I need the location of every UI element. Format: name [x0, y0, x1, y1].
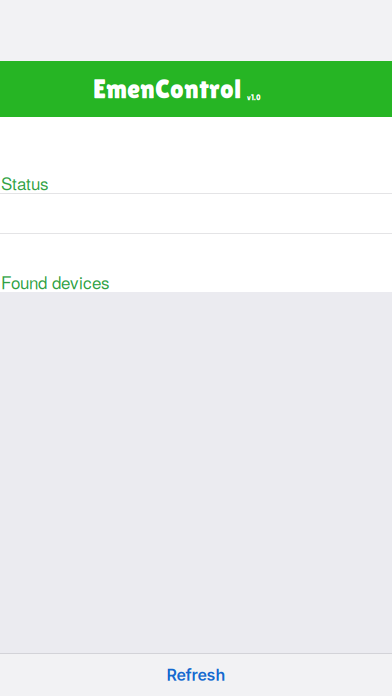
button[interactable]: Refresh: [0, 654, 392, 696]
staticText: Found devices: [1, 270, 110, 294]
staticText: v1.0: [247, 93, 261, 102]
staticText: EmenControl: [93, 74, 241, 104]
staticText: Refresh: [166, 665, 225, 685]
staticText: Status: [1, 171, 49, 195]
